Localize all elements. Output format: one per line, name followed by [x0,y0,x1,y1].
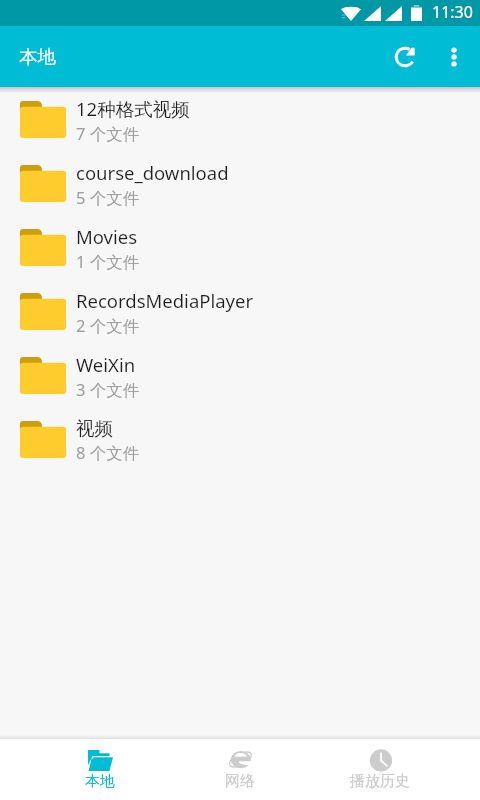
button[interactable]: 视频 [0,407,480,471]
staticText: 本地 [85,772,115,791]
staticText: 本地 [19,45,56,68]
staticText: 视频 [76,417,113,440]
button[interactable]: More options [428,31,480,83]
staticText: Movies [76,224,138,249]
button[interactable]: 本地 [30,739,170,800]
button[interactable]: 12种格式视频 [0,87,480,151]
button[interactable]: RecordsMediaPlayer [0,279,480,343]
button[interactable]: course_download [0,151,480,215]
button[interactable]: Refresh [376,31,428,83]
staticText: 1 个文件 [76,250,140,273]
staticText: 网络 [225,772,255,791]
staticText: 5 个文件 [76,186,140,209]
staticText: 11:30 [432,1,473,23]
staticText: WeiXin [76,352,136,377]
staticText: 12种格式视频 [76,96,190,121]
staticText: course_download [76,160,229,185]
staticText: 2 个文件 [76,314,140,337]
staticText: RecordsMediaPlayer [76,288,254,313]
button[interactable]: Movies [0,215,480,279]
staticText: 7 个文件 [76,122,140,145]
staticText: 8 个文件 [76,441,140,464]
staticText: 播放历史 [350,772,410,791]
staticText: 3 个文件 [76,378,140,401]
button[interactable]: WeiXin [0,343,480,407]
button[interactable]: 播放历史 [310,739,450,800]
button[interactable]: 网络 [170,739,310,800]
